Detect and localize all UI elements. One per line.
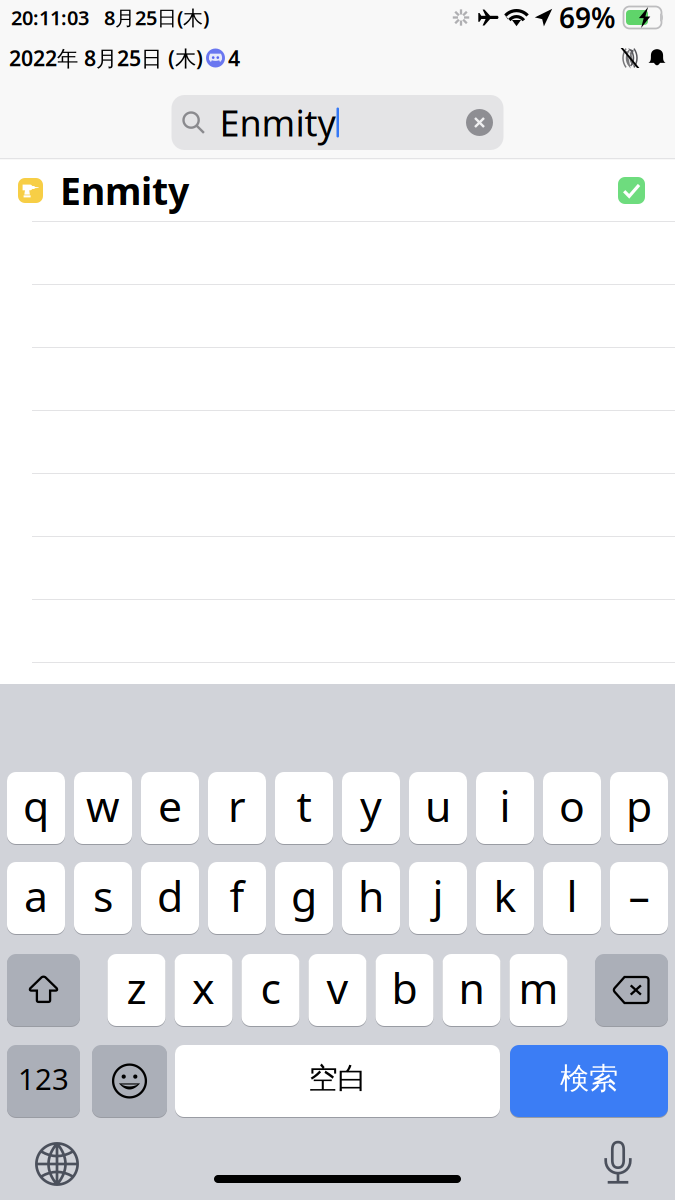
staticText: 空白: [308, 1060, 366, 1096]
staticText: y: [360, 777, 382, 834]
button[interactable]: w: [74, 771, 132, 845]
button[interactable]: y: [342, 771, 400, 845]
staticText: w: [86, 777, 120, 834]
button[interactable]: g: [275, 861, 333, 935]
staticText: –: [628, 867, 649, 924]
staticText: g: [291, 867, 317, 924]
button[interactable]: m: [509, 953, 567, 1027]
button[interactable]: b: [375, 953, 433, 1027]
staticText: d: [157, 867, 183, 924]
staticText: Enmity: [60, 166, 189, 215]
staticText: v: [326, 959, 348, 1016]
button[interactable]: c: [241, 953, 299, 1027]
button[interactable]: k: [476, 861, 534, 935]
staticText: Enmity: [219, 99, 335, 146]
staticText: 123: [18, 1059, 69, 1098]
staticText: 4: [228, 44, 240, 72]
staticText: a: [24, 867, 48, 924]
button[interactable]: Dictation: [593, 1139, 643, 1189]
staticText: n: [458, 959, 484, 1016]
staticText: m: [518, 959, 558, 1016]
staticText: j: [432, 867, 443, 924]
staticText: 検索: [560, 1060, 618, 1096]
button[interactable]: e: [141, 771, 199, 845]
staticText: l: [566, 867, 577, 924]
button[interactable]: –: [610, 861, 668, 935]
staticText: p: [626, 777, 652, 834]
staticText: t: [296, 777, 311, 834]
button[interactable]: r: [208, 771, 266, 845]
button[interactable]: s: [74, 861, 132, 935]
staticText: b: [391, 959, 417, 1016]
button[interactable]: a: [7, 861, 65, 935]
button[interactable]: n: [442, 953, 500, 1027]
staticText: e: [158, 777, 182, 834]
button[interactable]: 123: [7, 1044, 80, 1118]
staticText: 2022年 8月25日 (木): [9, 44, 203, 72]
button[interactable]: Emoji: [92, 1044, 167, 1118]
staticText: f: [229, 867, 244, 924]
button[interactable]: o: [543, 771, 601, 845]
button[interactable]: t: [275, 771, 333, 845]
staticText: q: [23, 777, 49, 834]
button[interactable]: q: [7, 771, 65, 845]
staticText: 69%: [559, 0, 616, 36]
staticText: i: [499, 777, 510, 834]
button[interactable]: Next keyboard: [32, 1139, 82, 1189]
staticText: z: [126, 959, 146, 1016]
staticText: h: [358, 867, 384, 924]
button[interactable]: h: [342, 861, 400, 935]
staticText: o: [559, 777, 585, 834]
button[interactable]: l: [543, 861, 601, 935]
staticText: x: [192, 959, 215, 1016]
button[interactable]: 空白: [175, 1044, 500, 1118]
button[interactable]: Shift: [7, 953, 80, 1027]
button[interactable]: 検索: [510, 1044, 668, 1118]
button[interactable]: x: [174, 953, 232, 1027]
staticText: 20:11:03 8月25日(木): [11, 4, 209, 31]
staticText: c: [260, 959, 280, 1016]
button[interactable]: Enmity: [0, 160, 675, 221]
button[interactable]: Delete: [595, 953, 668, 1027]
staticText: u: [425, 777, 451, 834]
button[interactable]: Clear text: [460, 103, 498, 141]
button[interactable]: i: [476, 771, 534, 845]
button[interactable]: z: [107, 953, 165, 1027]
button[interactable]: f: [208, 861, 266, 935]
staticText: s: [93, 867, 113, 924]
button[interactable]: j: [409, 861, 467, 935]
button[interactable]: d: [141, 861, 199, 935]
button[interactable]: u: [409, 771, 467, 845]
button[interactable]: v: [308, 953, 366, 1027]
button[interactable]: p: [610, 771, 668, 845]
staticText: r: [228, 777, 246, 834]
staticText: k: [493, 867, 516, 924]
